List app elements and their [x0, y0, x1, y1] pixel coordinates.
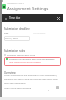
button[interactable]: App icon	[2, 4, 6, 9]
button[interactable]: Students submit work once	[4, 53, 36, 57]
staticText: Oct 12, 2023	[5, 37, 18, 40]
button[interactable]: Oct 12, 2023	[4, 36, 30, 41]
button[interactable]: Learn more about grading	[4, 87, 32, 90]
button[interactable]: Help	[56, 86, 59, 89]
staticText: When submissions are enabled for this as…	[4, 74, 60, 85]
staticText: Students submit work once	[7, 54, 36, 57]
staticText: Overview	[4, 71, 16, 75]
staticText: Learn more about grading	[4, 87, 32, 90]
staticText: Due	[4, 32, 9, 35]
button[interactable]: Close	[55, 15, 62, 22]
staticText: Homework / Unit 4	[7, 2, 24, 5]
staticText: Students can resubmit work until the dea…	[9, 58, 55, 61]
staticText: Time due	[9, 16, 21, 20]
staticText: Submission deadline	[4, 27, 30, 31]
button[interactable]: Timer	[4, 17, 7, 20]
staticText: and may lose marks	[9, 64, 29, 66]
staticText: 10/12/2023	[33, 32, 46, 35]
staticText: Submission rules	[4, 49, 26, 53]
staticText: Late submissions will be flagged	[9, 61, 41, 64]
staticText: Assignment Settings	[7, 5, 49, 11]
button[interactable]: Students can resubmit work until the dea…	[4, 57, 61, 66]
